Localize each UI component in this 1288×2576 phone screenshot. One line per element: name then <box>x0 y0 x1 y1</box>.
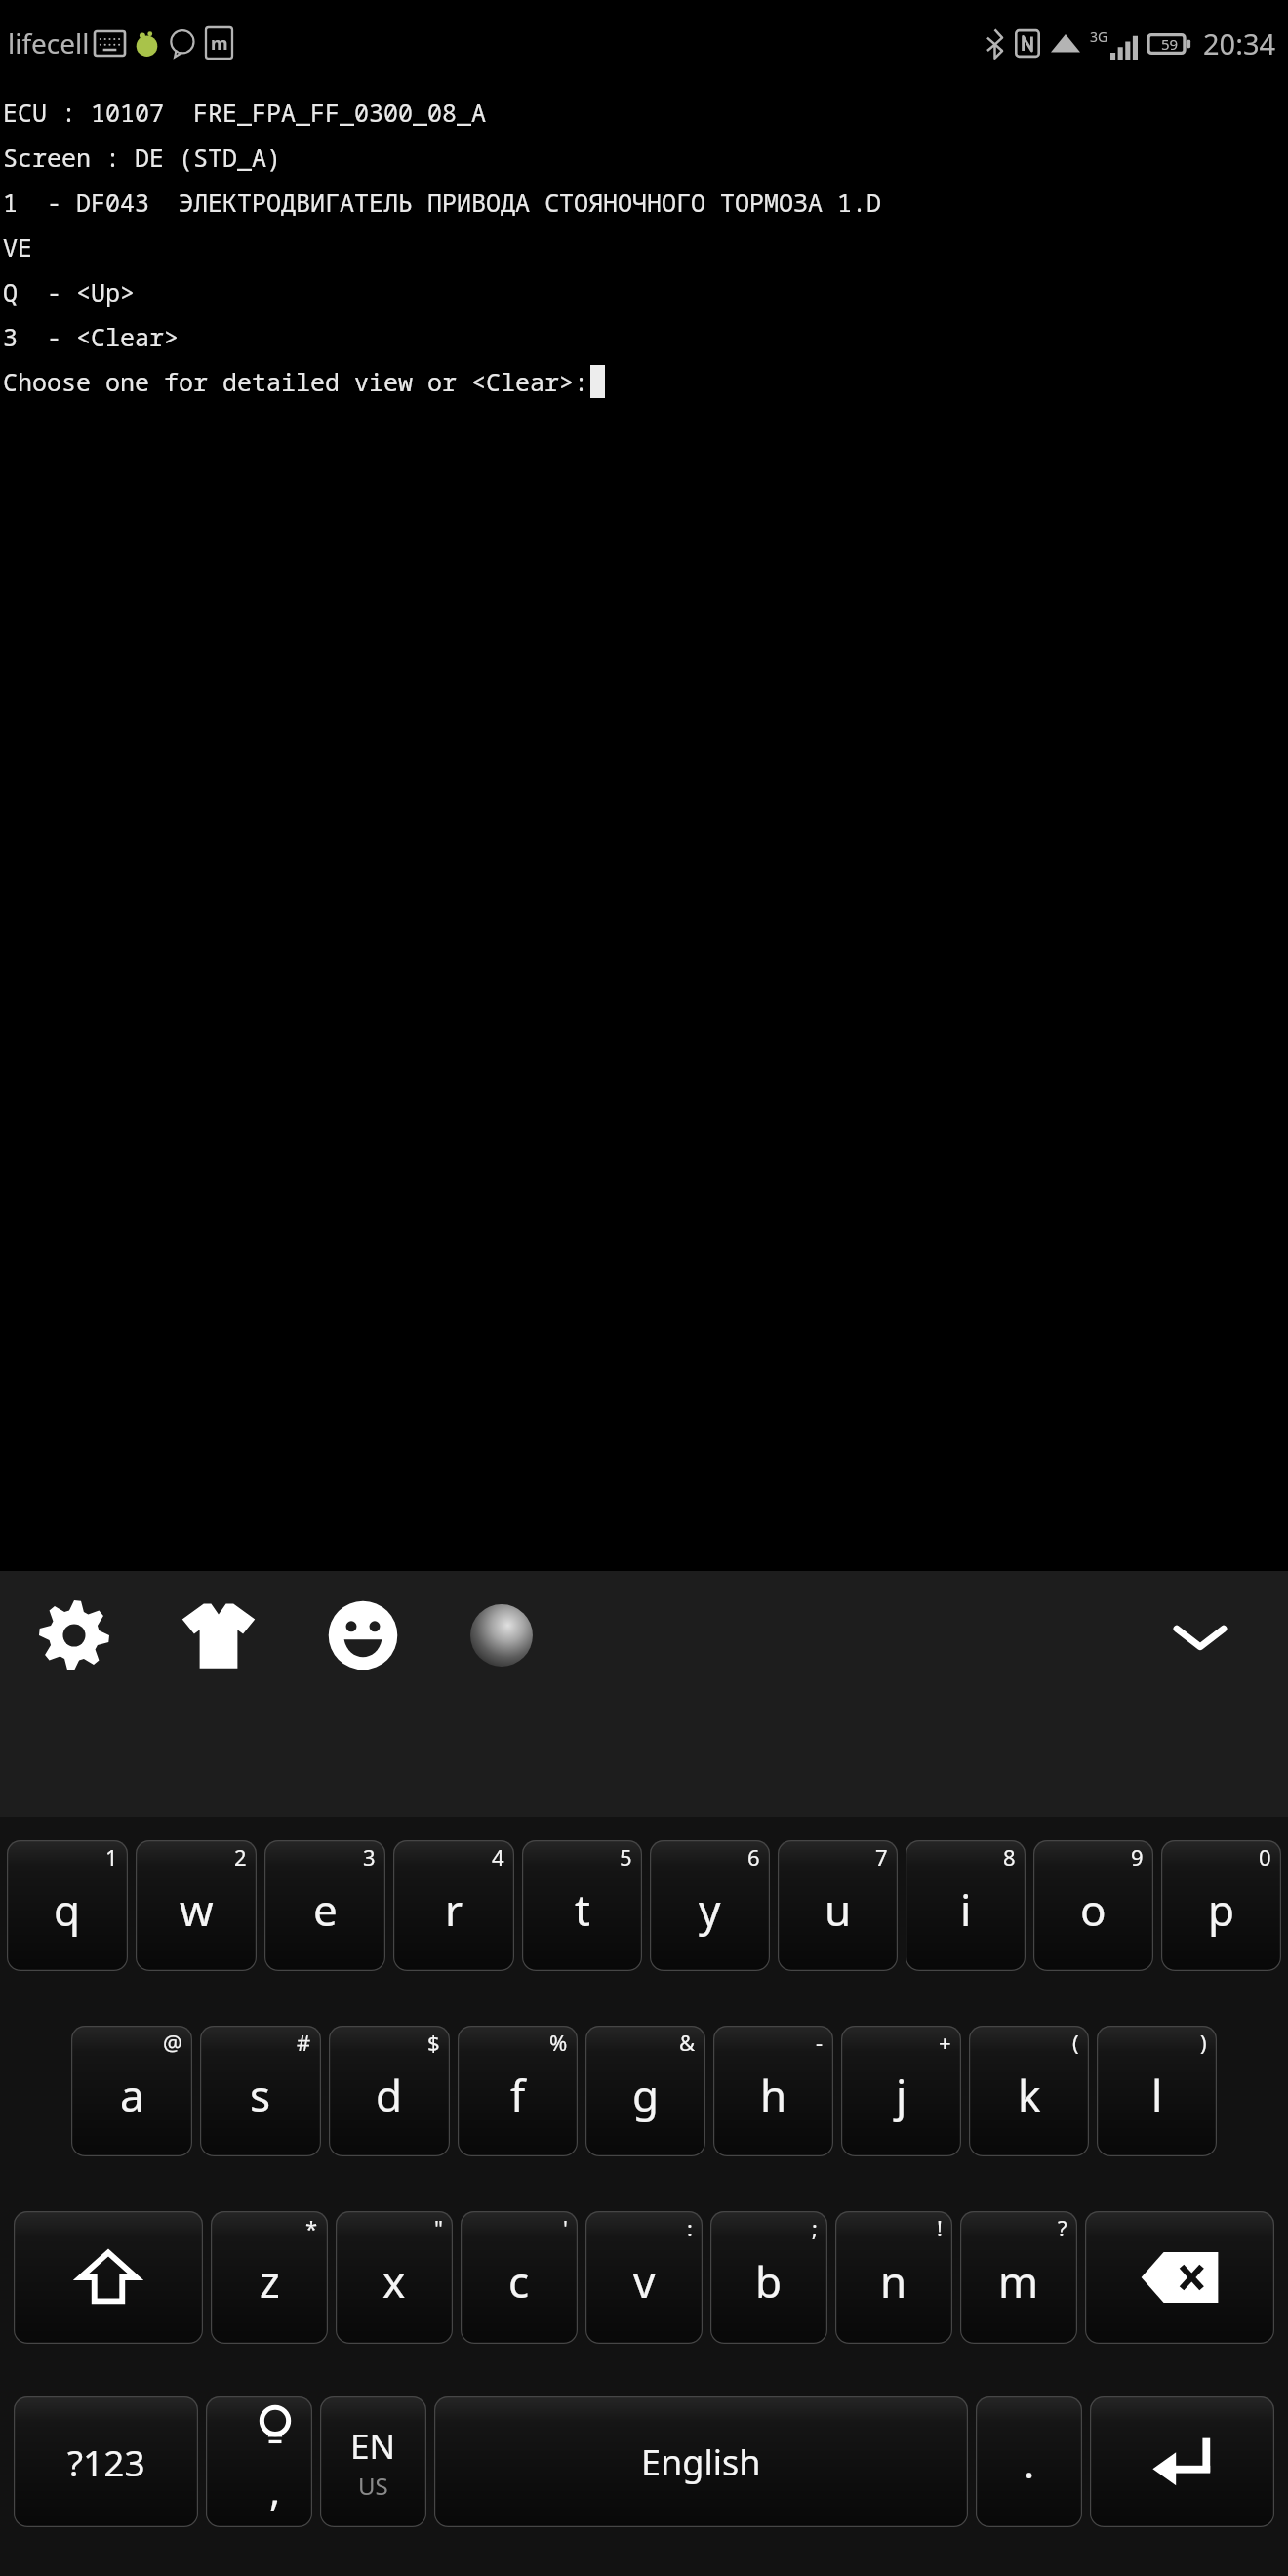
staticText: c <box>508 2252 530 2311</box>
button[interactable]: Shift <box>14 2211 203 2344</box>
staticText: e <box>313 1880 338 1939</box>
staticText: ) <box>1200 2028 1207 2057</box>
button[interactable]: Voice input <box>455 1589 548 1682</box>
staticText: v <box>633 2252 656 2311</box>
staticText: , <box>269 2462 281 2517</box>
button[interactable]: j <box>841 2026 961 2156</box>
staticText: & <box>679 2028 696 2057</box>
button[interactable]: a <box>71 2026 192 2156</box>
button[interactable]: h <box>713 2026 833 2156</box>
staticText: n <box>880 2252 907 2311</box>
staticText: Q - <Up> <box>3 275 136 308</box>
button[interactable]: v <box>585 2211 703 2344</box>
button[interactable]: d <box>329 2026 450 2156</box>
staticText: + <box>939 2028 951 2057</box>
staticText: x <box>382 2252 406 2311</box>
button[interactable]: z <box>211 2211 328 2344</box>
button[interactable]: l <box>1097 2026 1217 2156</box>
staticText: i <box>960 1880 972 1939</box>
button[interactable]: c <box>461 2211 578 2344</box>
staticText: 2 <box>234 1842 247 1872</box>
staticText: 59 <box>1161 34 1179 54</box>
staticText: ' <box>563 2213 568 2242</box>
staticText: * <box>305 2213 318 2242</box>
staticText: US <box>358 2470 388 2502</box>
button[interactable]: Emoji <box>316 1589 410 1682</box>
button[interactable]: Hide keyboard <box>1151 1592 1249 1682</box>
button[interactable]: English <box>434 2396 968 2527</box>
staticText: Screen : DE (STD_A) <box>3 141 282 174</box>
button[interactable]: i <box>906 1840 1026 1971</box>
button[interactable]: Enter <box>1090 2396 1274 2527</box>
button[interactable]: q <box>7 1840 128 1971</box>
button[interactable]: n <box>835 2211 952 2344</box>
staticText: lifecell <box>8 24 90 61</box>
staticText: f <box>510 2066 526 2124</box>
staticText: 3 <box>363 1842 376 1872</box>
staticText: . <box>1024 2435 1035 2490</box>
staticText: 5 <box>620 1842 632 1872</box>
staticText: : <box>687 2213 693 2242</box>
staticText: u <box>825 1880 852 1939</box>
button[interactable]: m <box>960 2211 1077 2344</box>
button[interactable]: Settings <box>27 1589 121 1682</box>
staticText: ! <box>937 2213 943 2242</box>
staticText: # <box>297 2028 311 2057</box>
staticText: l <box>1151 2066 1163 2124</box>
button[interactable]: e <box>264 1840 385 1971</box>
staticText: ?123 <box>67 2437 145 2486</box>
button[interactable]: Keyboard theme <box>172 1589 265 1682</box>
button[interactable]: u <box>778 1840 898 1971</box>
button[interactable]: b <box>710 2211 827 2344</box>
button[interactable]: f <box>458 2026 578 2156</box>
button[interactable]: w <box>136 1840 257 1971</box>
staticText: h <box>760 2066 787 2124</box>
staticText: q <box>54 1880 81 1939</box>
button[interactable]: r <box>393 1840 514 1971</box>
staticText: w <box>180 1880 214 1939</box>
staticText: k <box>1018 2066 1041 2124</box>
button[interactable]: ?123 <box>14 2396 198 2527</box>
staticText: 9 <box>1131 1842 1144 1872</box>
staticText: d <box>376 2066 403 2124</box>
button[interactable]: o <box>1033 1840 1153 1971</box>
button[interactable]: p <box>1161 1840 1281 1971</box>
staticText: p <box>1208 1880 1235 1939</box>
staticText: m <box>211 31 228 56</box>
staticText: s <box>250 2066 271 2124</box>
staticText: ? <box>1058 2213 1067 2242</box>
staticText: English <box>641 2438 761 2486</box>
staticText: 1 <box>105 1842 118 1872</box>
staticText: 8 <box>1003 1842 1016 1872</box>
button[interactable]: y <box>650 1840 770 1971</box>
staticText: z <box>260 2252 280 2311</box>
staticText: @ <box>163 2028 182 2057</box>
staticText: 6 <box>747 1842 760 1872</box>
button[interactable]: x <box>336 2211 453 2344</box>
staticText: VE <box>3 230 33 263</box>
staticText: r <box>445 1880 463 1939</box>
button[interactable]: Settings shortcut <box>206 2396 312 2527</box>
button[interactable]: k <box>969 2026 1089 2156</box>
staticText: b <box>755 2252 783 2311</box>
staticText: ; <box>812 2213 818 2242</box>
staticText: t <box>575 1880 590 1939</box>
staticText: ECU : 10107 FRE_FPA_FF_0300_08_A <box>3 96 487 129</box>
staticText: 1 - DF043 ЭЛЕКТРОДВИГАТЕЛЬ ПРИВОДА СТОЯН… <box>3 185 882 219</box>
button[interactable]: t <box>522 1840 642 1971</box>
button[interactable]: g <box>585 2026 705 2156</box>
staticText: EN <box>350 2423 396 2470</box>
staticText: " <box>434 2213 443 2242</box>
staticText: m <box>998 2252 1039 2311</box>
staticText: Choose one for detailed view or <Clear>: <box>3 365 589 398</box>
button[interactable]: Backspace <box>1085 2211 1274 2344</box>
staticText: 3G <box>1090 27 1108 46</box>
staticText: ( <box>1072 2028 1079 2057</box>
button[interactable]: . <box>976 2396 1082 2527</box>
staticText: g <box>632 2066 660 2124</box>
staticText: 4 <box>492 1842 504 1872</box>
staticText: $ <box>427 2028 440 2057</box>
button[interactable]: Change language <box>320 2396 426 2527</box>
staticText: 7 <box>875 1842 888 1872</box>
button[interactable]: s <box>200 2026 321 2156</box>
